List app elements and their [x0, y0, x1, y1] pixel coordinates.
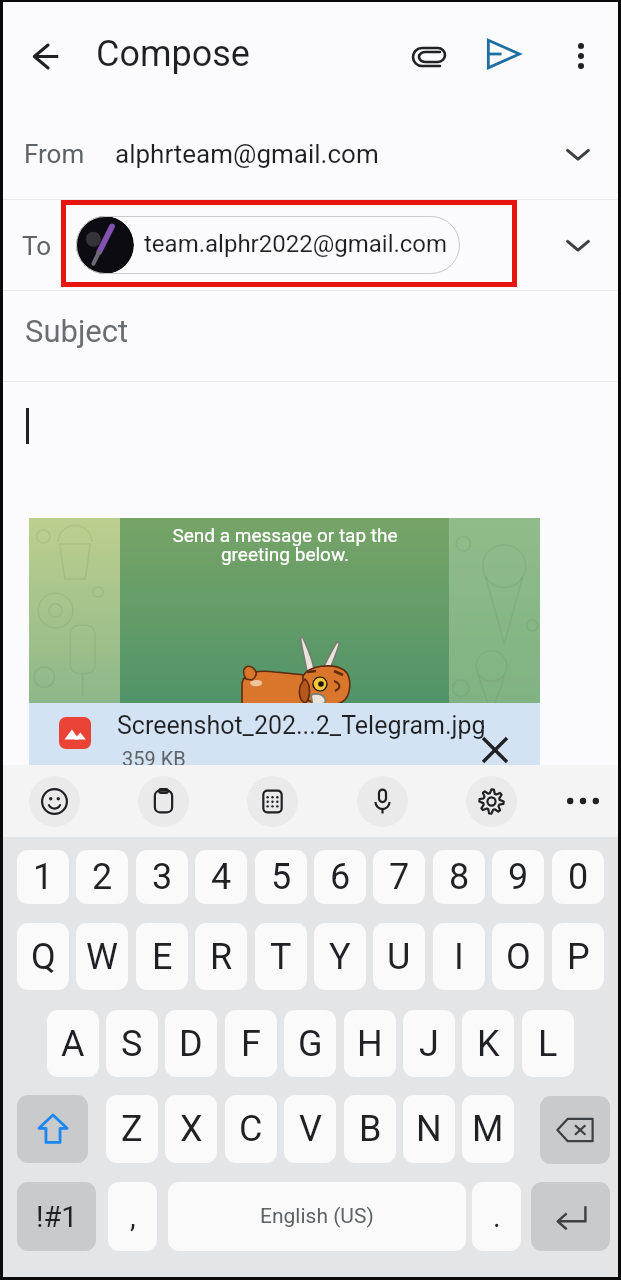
- staticText: Subject: [25, 313, 129, 349]
- staticText: Screenshot_202...2_Telegram.jpg: [117, 711, 486, 740]
- button[interactable]: More keyboard options: [559, 777, 606, 824]
- button[interactable]: .: [472, 1182, 521, 1251]
- button[interactable]: C: [225, 1095, 277, 1163]
- button[interactable]: ,: [108, 1182, 157, 1251]
- button[interactable]: 3: [136, 850, 188, 904]
- staticText: H: [357, 1023, 383, 1065]
- button[interactable]: Emoji: [29, 776, 80, 827]
- button[interactable]: Keyboard layout: [247, 776, 298, 827]
- staticText: B: [359, 1108, 382, 1150]
- button[interactable]: 6: [314, 850, 366, 904]
- button[interactable]: Z: [106, 1095, 158, 1163]
- staticText: 359 KB: [122, 747, 186, 770]
- staticText: 4: [211, 856, 232, 898]
- staticText: .: [493, 1200, 501, 1234]
- button[interactable]: 7: [373, 850, 425, 904]
- staticText: 1: [33, 856, 54, 898]
- button[interactable]: 1: [17, 850, 69, 904]
- staticText: W: [86, 936, 118, 978]
- button[interactable]: Show more fields: [551, 127, 605, 181]
- button[interactable]: Attach file: [399, 28, 459, 88]
- button[interactable]: S: [106, 1010, 158, 1077]
- staticText: A: [61, 1023, 85, 1065]
- staticText: U: [387, 936, 411, 978]
- button[interactable]: G: [284, 1010, 336, 1077]
- button[interactable]: B: [344, 1095, 396, 1163]
- staticText: X: [180, 1108, 203, 1150]
- staticText: Y: [329, 936, 351, 978]
- button[interactable]: 0: [552, 850, 604, 904]
- button[interactable]: More options: [553, 28, 609, 84]
- button[interactable]: L: [522, 1010, 574, 1077]
- staticText: I: [454, 936, 464, 978]
- button[interactable]: J: [403, 1010, 455, 1077]
- staticText: G: [298, 1023, 323, 1065]
- staticText: F: [241, 1023, 261, 1065]
- staticText: ,: [130, 1200, 136, 1234]
- staticText: alphrteam@gmail.com: [115, 139, 379, 169]
- staticText: English (US): [260, 1204, 374, 1229]
- button[interactable]: D: [165, 1010, 217, 1077]
- button[interactable]: T: [255, 923, 307, 990]
- button[interactable]: Show Cc and Bcc: [551, 218, 605, 272]
- button[interactable]: V: [284, 1095, 336, 1163]
- staticText: L: [538, 1023, 558, 1065]
- button[interactable]: 2: [76, 850, 128, 904]
- staticText: T: [270, 936, 292, 978]
- button[interactable]: W: [76, 923, 128, 990]
- button[interactable]: X: [165, 1095, 217, 1163]
- button[interactable]: team.alphr2022@gmail.com: [76, 216, 460, 274]
- staticText: E: [152, 936, 173, 978]
- staticText: V: [299, 1108, 322, 1150]
- button[interactable]: P: [552, 923, 604, 990]
- staticText: 9: [508, 856, 529, 898]
- button[interactable]: Y: [314, 923, 366, 990]
- staticText: J: [419, 1023, 439, 1065]
- staticText: !#1: [36, 1200, 78, 1234]
- button[interactable]: 5: [255, 850, 307, 904]
- staticText: To: [22, 231, 52, 261]
- button[interactable]: I: [433, 923, 485, 990]
- staticText: 2: [92, 856, 113, 898]
- button[interactable]: F: [225, 1010, 277, 1077]
- button[interactable]: Backspace: [540, 1096, 610, 1164]
- staticText: Z: [121, 1108, 143, 1150]
- button[interactable]: Settings: [466, 776, 517, 827]
- button[interactable]: Enter: [531, 1182, 610, 1251]
- staticText: Q: [31, 936, 56, 978]
- button[interactable]: K: [462, 1010, 514, 1077]
- staticText: 6: [330, 856, 351, 898]
- button[interactable]: Remove attachment: [467, 722, 523, 778]
- staticText: 0: [568, 856, 589, 898]
- staticText: K: [477, 1023, 500, 1065]
- button[interactable]: U: [373, 923, 425, 990]
- button[interactable]: E: [136, 923, 188, 990]
- button[interactable]: R: [195, 923, 247, 990]
- button[interactable]: H: [344, 1010, 396, 1077]
- button[interactable]: 9: [492, 850, 544, 904]
- button[interactable]: 8: [433, 850, 485, 904]
- button[interactable]: English (US): [168, 1182, 466, 1251]
- button[interactable]: !#1: [17, 1182, 96, 1251]
- staticText: From: [24, 139, 85, 169]
- staticText: 7: [389, 856, 410, 898]
- staticText: R: [210, 936, 233, 978]
- button[interactable]: O: [492, 923, 544, 990]
- button[interactable]: N: [403, 1095, 455, 1163]
- button[interactable]: Send: [472, 23, 534, 85]
- staticText: C: [239, 1108, 263, 1150]
- button[interactable]: Clipboard: [138, 776, 189, 827]
- staticText: 5: [271, 856, 292, 898]
- staticText: Send a message or tap the greeting below…: [172, 524, 398, 566]
- button[interactable]: Shift: [17, 1095, 88, 1163]
- staticText: N: [416, 1108, 442, 1150]
- button[interactable]: M: [462, 1095, 514, 1163]
- staticText: Compose: [96, 33, 250, 75]
- button[interactable]: A: [47, 1010, 99, 1077]
- staticText: S: [121, 1023, 143, 1065]
- button[interactable]: Back: [16, 26, 76, 86]
- button[interactable]: Q: [17, 923, 69, 990]
- button[interactable]: Voice input: [357, 776, 408, 827]
- staticText: team.alphr2022@gmail.com: [144, 230, 448, 258]
- button[interactable]: 4: [195, 850, 247, 904]
